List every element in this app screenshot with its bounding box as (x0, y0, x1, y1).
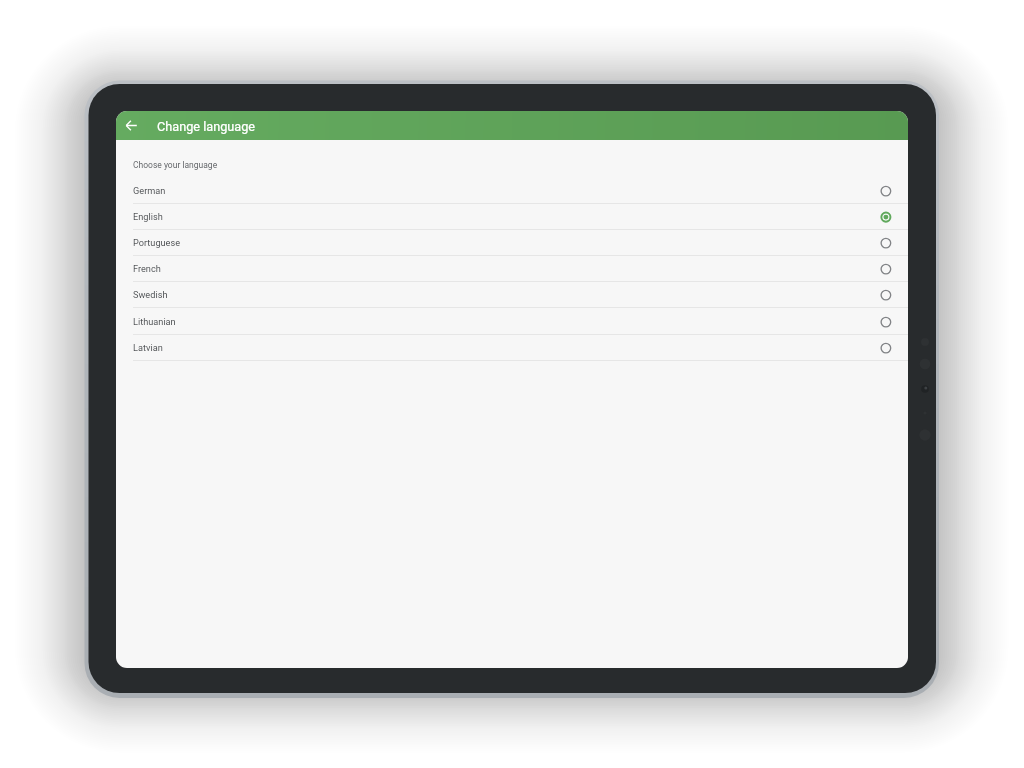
staticText: English (133, 211, 880, 222)
staticText: Swedish (133, 289, 880, 300)
button[interactable]: Swedish (116, 282, 908, 308)
staticText: Latvian (133, 342, 880, 353)
button[interactable]: Lithuanian (116, 308, 908, 335)
staticText: Portuguese (133, 237, 880, 248)
button[interactable]: Latvian (116, 335, 908, 361)
button[interactable]: French (116, 256, 908, 282)
button[interactable]: Back (124, 118, 139, 133)
staticText: French (133, 263, 880, 274)
button[interactable]: Portuguese (116, 230, 908, 256)
staticText: Choose your language (133, 160, 218, 170)
staticText: German (133, 185, 880, 196)
staticText: Lithuanian (133, 316, 880, 327)
button[interactable]: English (116, 204, 908, 230)
staticText: Change language (157, 119, 256, 134)
button[interactable]: German (116, 178, 908, 204)
